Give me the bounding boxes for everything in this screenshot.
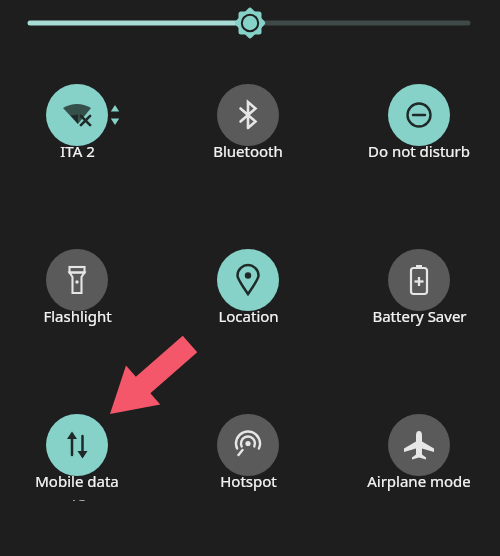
- staticText: Hotspot: [220, 471, 277, 491]
- button[interactable]: Location: [168, 236, 328, 336]
- staticText: 4G: [69, 495, 86, 501]
- staticText: Airplane mode: [367, 471, 471, 491]
- button[interactable]: Mobile data: [0, 401, 157, 501]
- staticText: Mobile data: [35, 471, 119, 491]
- button[interactable]: Do not disturb: [339, 71, 499, 171]
- staticText: ITA 2: [60, 141, 95, 161]
- staticText: Do not disturb: [368, 141, 470, 161]
- staticText: Flashlight: [43, 306, 112, 326]
- button[interactable]: ITA 2: [0, 71, 157, 171]
- staticText: Battery Saver: [372, 306, 467, 326]
- button[interactable]: Airplane mode: [339, 401, 499, 501]
- button[interactable]: Battery Saver: [339, 236, 499, 336]
- button[interactable]: Bluetooth: [168, 71, 328, 171]
- button[interactable]: Brightness: [0, 0, 500, 48]
- button[interactable]: Flashlight: [0, 236, 157, 336]
- staticText: Bluetooth: [213, 141, 283, 161]
- staticText: Location: [218, 306, 279, 326]
- button[interactable]: Hotspot: [168, 401, 328, 501]
